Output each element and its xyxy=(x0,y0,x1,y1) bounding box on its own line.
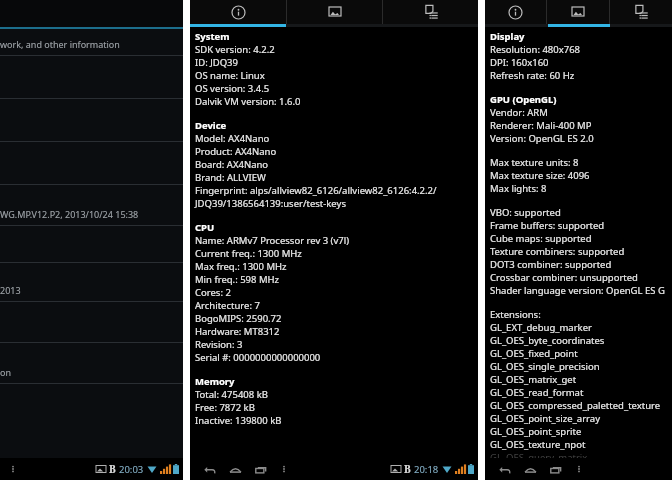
staticText: Cores: 2 xyxy=(195,286,231,299)
staticText: Extensions: xyxy=(490,308,541,321)
button[interactable]: 2013 xyxy=(0,263,183,302)
staticText: Serial #: 0000000000000000 xyxy=(195,351,321,364)
button[interactable]: Recent apps xyxy=(543,459,569,479)
button[interactable]: Back xyxy=(196,459,222,479)
staticText: System xyxy=(195,30,230,43)
staticText: OS version: 3.4.5 xyxy=(195,82,270,95)
button[interactable]: on xyxy=(0,343,183,384)
staticText: Max lights: 8 xyxy=(490,182,547,195)
staticText: GL_OES_point_size_array xyxy=(490,412,601,425)
staticText: SDK version: 4.2.2 xyxy=(195,43,275,56)
button[interactable]: More options xyxy=(569,459,589,479)
staticText: VBO: supported xyxy=(490,206,561,219)
button[interactable]: Display info xyxy=(287,0,382,24)
staticText: Free: 7872 kB xyxy=(195,401,255,414)
button[interactable]: work, and other information xyxy=(0,29,183,56)
staticText: GL_OES_compressed_paletted_texture xyxy=(490,399,661,412)
button[interactable]: Home xyxy=(517,459,543,479)
staticText: Memory xyxy=(195,375,235,388)
staticText: Max freq.: 1300 MHz xyxy=(195,260,287,273)
staticText: Hardware: MT8312 xyxy=(195,325,280,338)
staticText: B xyxy=(404,462,411,476)
staticText: Vendor: ARM xyxy=(490,106,548,119)
staticText: Board: AX4Nano xyxy=(195,158,269,171)
staticText: GL_OES_read_format xyxy=(490,386,584,399)
staticText: GL_OES_byte_coordinates xyxy=(490,334,605,347)
staticText: Resolution: 480x768 xyxy=(490,43,581,56)
staticText: JDQ39/1386564139:user/test-keys xyxy=(195,197,346,210)
staticText: Model: AX4Nano xyxy=(195,132,270,145)
button[interactable] xyxy=(0,226,183,263)
staticText: ID: JDQ39 xyxy=(195,56,238,69)
staticText: Version: OpenGL ES 2.0 xyxy=(490,132,594,145)
staticText: GL_OES_fixed_point xyxy=(490,347,578,360)
staticText: WG.MP.V12.P2, 2013/10/24 15:38 xyxy=(0,208,139,220)
staticText: Inactive: 139800 kB xyxy=(195,414,282,427)
staticText: Shader language version: OpenGL ES G xyxy=(490,284,665,297)
staticText: Dalvik VM version: 1.6.0 xyxy=(195,95,301,108)
staticText: work, and other information xyxy=(0,38,120,50)
staticText: GL_OES_point_sprite xyxy=(490,425,582,438)
button[interactable]: Recent apps xyxy=(248,459,274,479)
button[interactable] xyxy=(0,56,183,99)
staticText: Device xyxy=(195,119,227,132)
button[interactable]: Home xyxy=(222,459,248,479)
staticText: 2013 xyxy=(0,284,21,296)
button[interactable] xyxy=(0,99,183,142)
staticText: Max texture units: 8 xyxy=(490,156,579,169)
staticText: CPU xyxy=(195,221,215,234)
staticText: 20:03 xyxy=(119,463,144,476)
staticText: GL_OES_matrix_get xyxy=(490,373,577,386)
staticText: Total: 475408 kB xyxy=(195,388,268,401)
staticText: Texture combiners: supported xyxy=(490,245,625,258)
staticText: Current freq.: 1300 MHz xyxy=(195,247,302,260)
button[interactable]: More options xyxy=(274,459,294,479)
staticText: BogoMIPS: 2590.72 xyxy=(195,312,282,325)
button[interactable]: Report xyxy=(383,0,478,24)
staticText: Product: AX4Nano xyxy=(195,145,277,158)
staticText: Name: ARMv7 Processor rev 3 (v7l) xyxy=(195,234,350,247)
staticText: Min freq.: 598 MHz xyxy=(195,273,280,286)
staticText: GL_OES_single_precision xyxy=(490,360,600,373)
staticText: Brand: ALLVIEW xyxy=(195,171,266,184)
staticText: Renderer: Mali-400 MP xyxy=(490,119,592,132)
staticText: 20:18 xyxy=(414,463,439,476)
staticText: DOT3 combiner: supported xyxy=(490,258,612,271)
staticText: DPI: 160x160 xyxy=(490,56,549,69)
button[interactable]: Display info xyxy=(547,0,609,24)
staticText: on xyxy=(0,366,12,378)
staticText: Fingerprint: alps/allview82_6126/allview… xyxy=(195,184,437,197)
button[interactable]: Report xyxy=(610,0,672,24)
staticText: Refresh rate: 60 Hz xyxy=(490,69,575,82)
staticText: Max texture size: 4096 xyxy=(490,169,590,182)
staticText: Cube maps: supported xyxy=(490,232,592,245)
staticText: GL_EXT_debug_marker xyxy=(490,321,592,334)
button[interactable]: WG.MP.V12.P2, 2013/10/24 15:38 xyxy=(0,185,183,226)
staticText: Frame buffers: supported xyxy=(490,219,605,232)
staticText: OS name: Linux xyxy=(195,69,265,82)
staticText: Architecture: 7 xyxy=(195,299,260,312)
button[interactable]: More options xyxy=(4,460,22,478)
staticText: Crossbar combiner: unsupported xyxy=(490,271,638,284)
staticText: GL_OES_query_matrix xyxy=(490,451,588,458)
staticText: Revision: 3 xyxy=(195,338,243,351)
button[interactable] xyxy=(0,142,183,185)
staticText: B xyxy=(109,462,116,476)
button[interactable] xyxy=(0,302,183,343)
staticText: Display xyxy=(490,30,525,43)
button[interactable]: System info xyxy=(485,0,546,24)
button[interactable]: Back xyxy=(491,459,517,479)
button[interactable]: System info xyxy=(190,0,286,24)
staticText: GL_OES_texture_npot xyxy=(490,438,586,451)
staticText: GPU (OpenGL) xyxy=(490,93,557,106)
